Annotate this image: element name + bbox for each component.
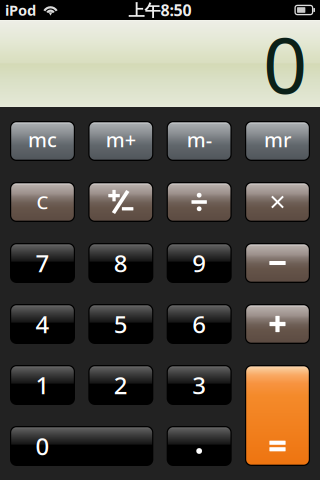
button[interactable]: 1 [10, 365, 75, 405]
button[interactable]: 6 [167, 304, 232, 344]
button[interactable]: mc [10, 121, 75, 161]
button[interactable]: Clear [10, 182, 75, 222]
staticText: mc [28, 126, 57, 153]
button[interactable]: 2 [88, 365, 153, 405]
staticText: 5 [114, 308, 128, 340]
staticText: 0 [35, 430, 49, 462]
staticText: 0 [263, 12, 307, 115]
staticText: 2 [114, 369, 128, 401]
staticText: 1 [35, 369, 49, 401]
button[interactable]: 0 [10, 426, 153, 466]
staticText: 上午8:50 [128, 0, 191, 21]
staticText: m+ [106, 126, 136, 153]
button[interactable]: m+ [88, 121, 153, 161]
staticText: 8 [114, 247, 128, 279]
button[interactable]: 4 [10, 304, 75, 344]
button[interactable]: Multiply [245, 182, 310, 222]
staticText: 4 [35, 308, 49, 340]
button[interactable]: Decimal point [167, 426, 232, 466]
button[interactable]: 5 [88, 304, 153, 344]
button[interactable]: 7 [10, 243, 75, 283]
button[interactable]: mr [245, 121, 310, 161]
button[interactable]: 8 [88, 243, 153, 283]
staticText: 6 [192, 308, 206, 340]
staticText: iPod [5, 0, 36, 20]
button[interactable]: 3 [167, 365, 232, 405]
button[interactable]: Plus [245, 304, 310, 344]
staticText: mr [264, 126, 291, 153]
button[interactable]: Divide [167, 182, 232, 222]
staticText: C [36, 190, 48, 214]
staticText: m- [187, 126, 212, 153]
button[interactable]: Minus [245, 243, 310, 283]
button[interactable]: Equals [245, 365, 310, 466]
button[interactable]: 9 [167, 243, 232, 283]
button[interactable]: m- [167, 121, 232, 161]
button[interactable]: Plus minus [88, 182, 153, 222]
staticText: 9 [192, 247, 206, 279]
staticText: 7 [35, 247, 49, 279]
staticText: 3 [192, 369, 206, 401]
